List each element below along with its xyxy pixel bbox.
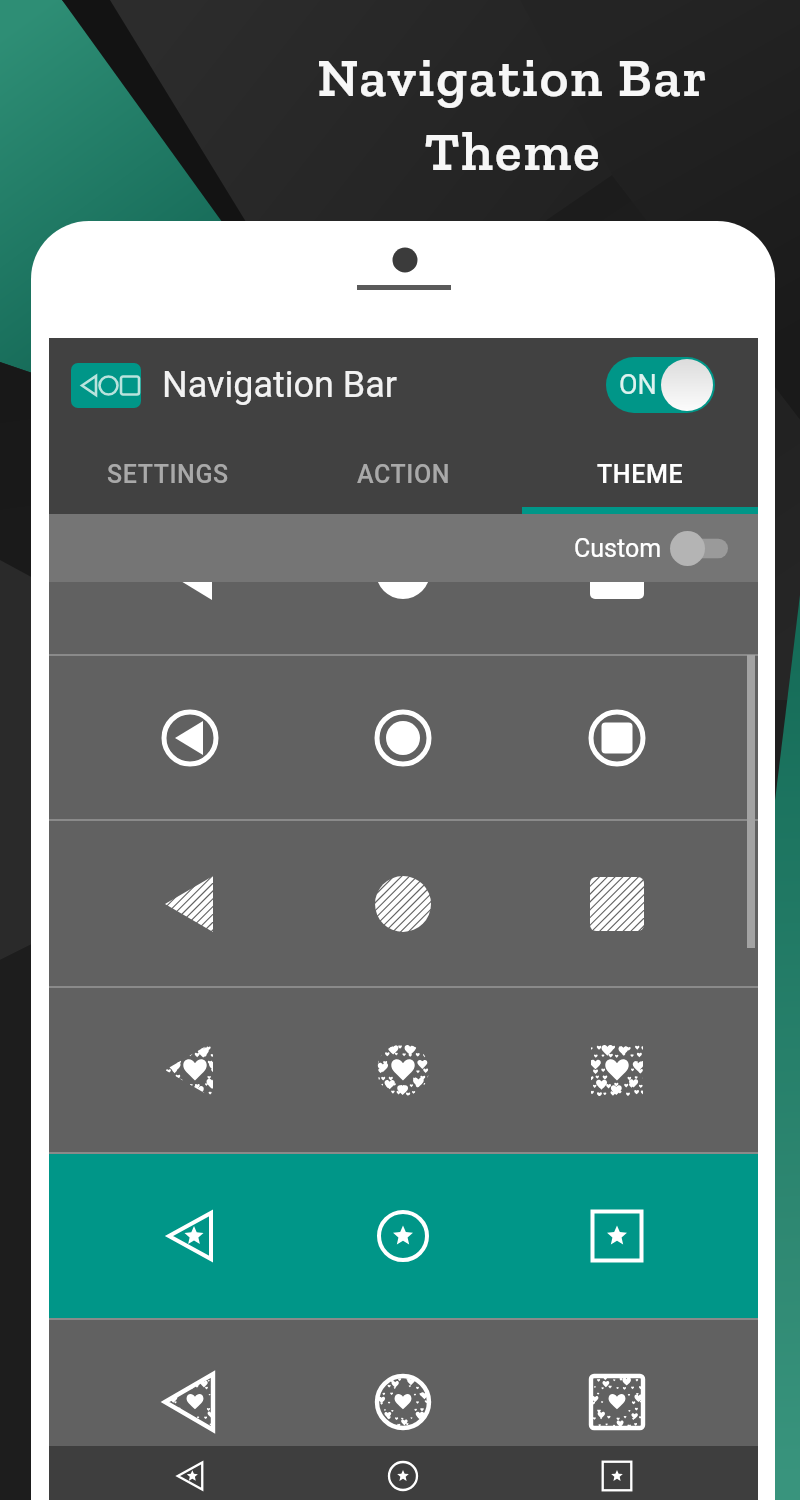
staticText: ACTION xyxy=(357,460,451,489)
button[interactable]: Theme style 1 xyxy=(49,582,758,654)
button[interactable]: Theme style 4 xyxy=(49,988,758,1152)
button[interactable]: Navigation Bar app icon xyxy=(71,363,141,408)
staticText: Navigation Bar xyxy=(317,44,709,110)
staticText: ON xyxy=(619,369,657,401)
button[interactable]: Theme style 5 xyxy=(49,1154,758,1318)
staticText: Custom xyxy=(574,534,662,563)
button[interactable]: ACTION xyxy=(286,437,522,507)
staticText: Navigation Bar xyxy=(162,364,398,406)
button[interactable]: Theme style 3 xyxy=(49,821,758,986)
button[interactable]: Home xyxy=(296,1446,510,1500)
staticText: SETTINGS xyxy=(107,460,229,489)
button[interactable]: Toggle navigation bar on xyxy=(606,357,715,413)
button[interactable]: Back xyxy=(83,1446,296,1500)
button[interactable]: Recents xyxy=(510,1446,724,1500)
button[interactable]: Theme style 2 xyxy=(49,656,758,819)
staticText: THEME xyxy=(597,460,684,489)
staticText: Theme xyxy=(424,118,602,184)
button[interactable]: SETTINGS xyxy=(49,437,286,507)
button[interactable]: Theme style 6 xyxy=(49,1320,758,1484)
button[interactable]: THEME xyxy=(522,437,758,507)
button[interactable]: Custom xyxy=(49,514,758,582)
